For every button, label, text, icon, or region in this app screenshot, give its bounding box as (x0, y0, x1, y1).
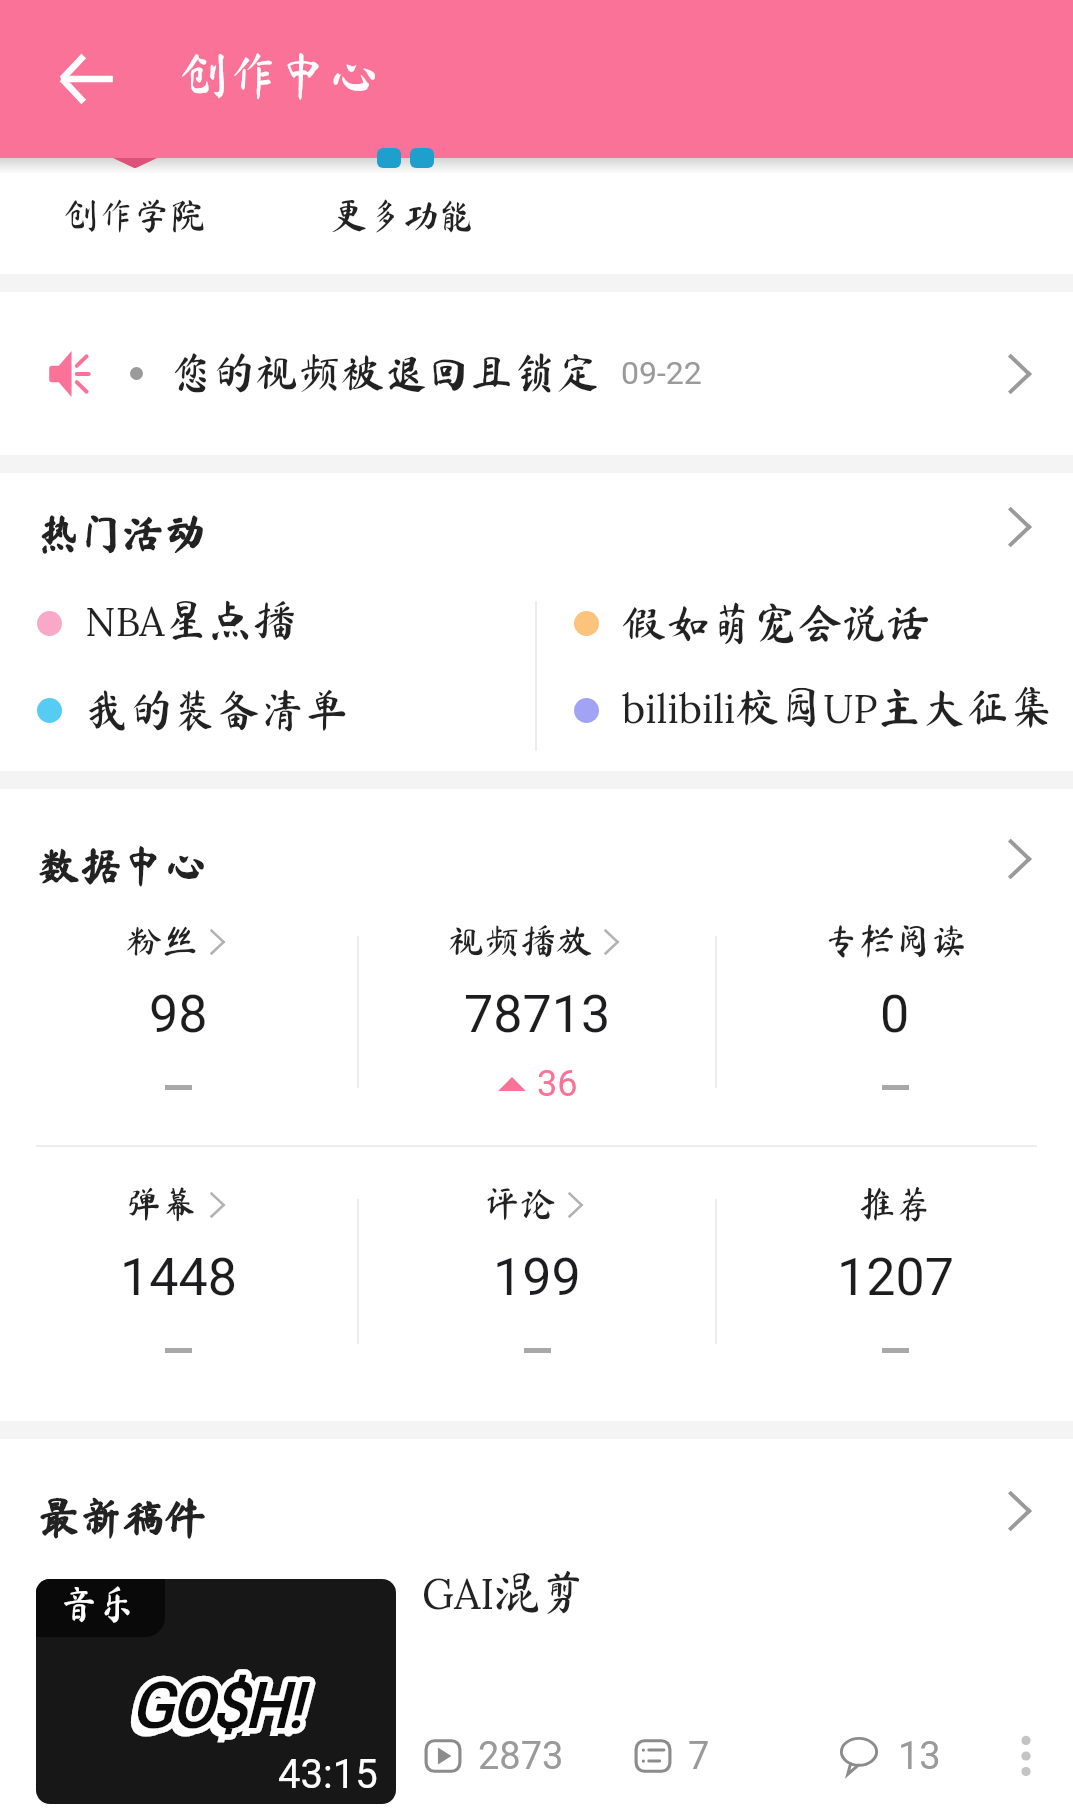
button[interactable]: More options (997, 1727, 1055, 1785)
staticText: 创作中心 (178, 50, 378, 100)
staticText: 09-22 (621, 354, 702, 392)
button[interactable]: 您的视频被退回且锁定 (0, 292, 1073, 455)
button[interactable]: 数据中心 (0, 789, 1073, 884)
staticText: bilibili校园UP主大征集 (622, 683, 1054, 734)
staticText: NBA星点播 (85, 596, 297, 647)
staticText: 您的视频被退回且锁定 (169, 350, 599, 393)
staticText: 更多功能 (331, 197, 476, 233)
staticText: 98 (149, 984, 208, 1045)
button[interactable]: 视频播放 (359, 884, 715, 1145)
staticText: 我的装备清单 (85, 687, 349, 731)
staticText: GO$H! (131, 1669, 301, 1742)
button[interactable]: bilibili校园UP主大征集 (537, 667, 1073, 754)
staticText: 热门活动 (38, 512, 207, 554)
staticText: 假如萌宠会说话 (622, 600, 930, 644)
staticText: GO$H! (131, 1669, 301, 1742)
staticText: 43:15 (278, 1751, 378, 1798)
staticText: 弹幕 (126, 1185, 199, 1221)
staticText: 36 (537, 1063, 578, 1105)
staticText: 专栏阅读 (823, 922, 968, 958)
button[interactable]: More 最新稿件 (983, 1475, 1055, 1547)
staticText: 最新稿件 (38, 1496, 207, 1538)
staticText: GAI混剪 (422, 1567, 587, 1621)
staticText: 粉丝 (126, 922, 199, 958)
staticText: 78713 (464, 984, 611, 1045)
staticText: GO$H! (124, 1677, 294, 1750)
button[interactable]: 粉丝 (0, 884, 357, 1145)
staticText: 创作学院 (62, 197, 207, 233)
button[interactable]: 更多功能 (269, 180, 538, 250)
button[interactable]: 推荐 (717, 1147, 1073, 1421)
button[interactable]: More 热门活动 (983, 491, 1055, 563)
button[interactable]: 弹幕 (0, 1147, 357, 1421)
staticText: 视频播放 (448, 922, 593, 958)
staticText: 1207 (837, 1247, 954, 1308)
button[interactable]: 创作学院 (0, 180, 269, 250)
staticText: 199 (493, 1247, 581, 1308)
button[interactable]: Open notice (983, 338, 1055, 410)
staticText: 1448 (120, 1247, 237, 1308)
staticText: 音乐 (60, 1585, 137, 1623)
staticText: 7 (688, 1734, 710, 1779)
staticText: 评论 (484, 1185, 557, 1221)
button[interactable]: 评论 (359, 1147, 715, 1421)
staticText: 13 (898, 1734, 941, 1779)
button[interactable]: 最新稿件 (0, 1439, 1073, 1562)
button[interactable]: 我的装备清单 (0, 667, 535, 754)
staticText: 0 (880, 984, 910, 1045)
staticText: 推荐 (859, 1185, 932, 1221)
staticText: 2873 (478, 1734, 564, 1779)
button[interactable]: 专栏阅读 (717, 884, 1073, 1145)
button[interactable]: Back (38, 31, 134, 127)
button[interactable]: NBA星点播 (0, 580, 535, 667)
button[interactable]: 热门活动 (0, 473, 1073, 580)
staticText: 数据中心 (38, 844, 207, 886)
button[interactable]: More 数据中心 (983, 823, 1055, 895)
button[interactable]: 假如萌宠会说话 (537, 580, 1073, 667)
button[interactable]: GO$H! (0, 1579, 1073, 1804)
